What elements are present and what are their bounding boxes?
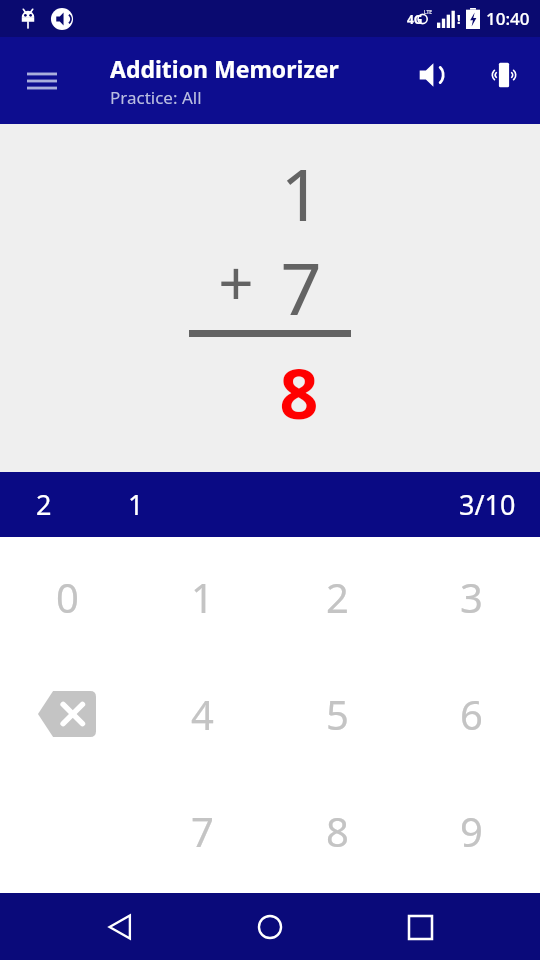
staticText: 8 — [326, 804, 349, 858]
button[interactable]: Back — [90, 897, 150, 957]
button[interactable]: 5 — [279, 670, 395, 758]
staticText: LTE — [424, 9, 433, 16]
button[interactable]: Home — [240, 897, 300, 957]
button[interactable]: 4 — [144, 670, 260, 758]
staticText: 5 — [326, 687, 349, 741]
button[interactable]: 8 — [279, 787, 395, 875]
staticText: 2 — [36, 486, 52, 523]
staticText: + — [206, 240, 266, 324]
button[interactable]: Toggle vibration — [478, 49, 530, 101]
button[interactable]: 9 — [413, 787, 529, 875]
button[interactable]: 1 — [144, 553, 260, 641]
staticText: 7 — [191, 804, 214, 858]
staticText: Practice: All — [110, 86, 202, 109]
staticText: 2 — [326, 570, 349, 624]
button[interactable]: Open navigation menu — [14, 53, 70, 109]
button[interactable]: 7 — [144, 787, 260, 875]
staticText: 9 — [460, 804, 483, 858]
staticText: 1 — [191, 570, 214, 624]
button[interactable]: 2 — [279, 553, 395, 641]
button[interactable]: Backspace — [9, 670, 125, 758]
button[interactable]: Toggle sound — [406, 49, 458, 101]
staticText: 3 — [460, 570, 483, 624]
staticText: 0 — [56, 570, 79, 624]
staticText: 10:40 — [486, 7, 530, 30]
staticText: 6 — [460, 687, 483, 741]
button[interactable]: 3 — [413, 553, 529, 641]
staticText: ! — [457, 10, 461, 28]
staticText: 4 — [191, 687, 214, 741]
staticText: 4G — [407, 11, 423, 27]
staticText: 8 — [268, 346, 330, 439]
staticText: 3/10 — [459, 486, 516, 523]
button[interactable]: 6 — [413, 670, 529, 758]
staticText: 1 — [128, 486, 144, 523]
button[interactable]: 0 — [9, 553, 125, 641]
staticText: 1 — [270, 144, 332, 242]
button[interactable]: Recent apps — [390, 897, 450, 957]
staticText: Addition Memorizer — [110, 53, 339, 84]
staticText: 7 — [270, 238, 332, 336]
